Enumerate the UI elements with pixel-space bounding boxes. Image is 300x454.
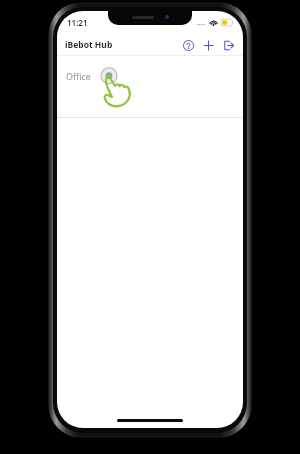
button[interactable]: Help: [178, 35, 198, 55]
staticText: Office: [66, 70, 91, 82]
button[interactable]: iBebot Hub: [65, 39, 113, 51]
button[interactable]: Add: [198, 35, 218, 55]
staticText: 11:21: [67, 17, 88, 28]
button[interactable]: Office: [57, 56, 243, 118]
button[interactable]: Log out: [218, 35, 238, 55]
